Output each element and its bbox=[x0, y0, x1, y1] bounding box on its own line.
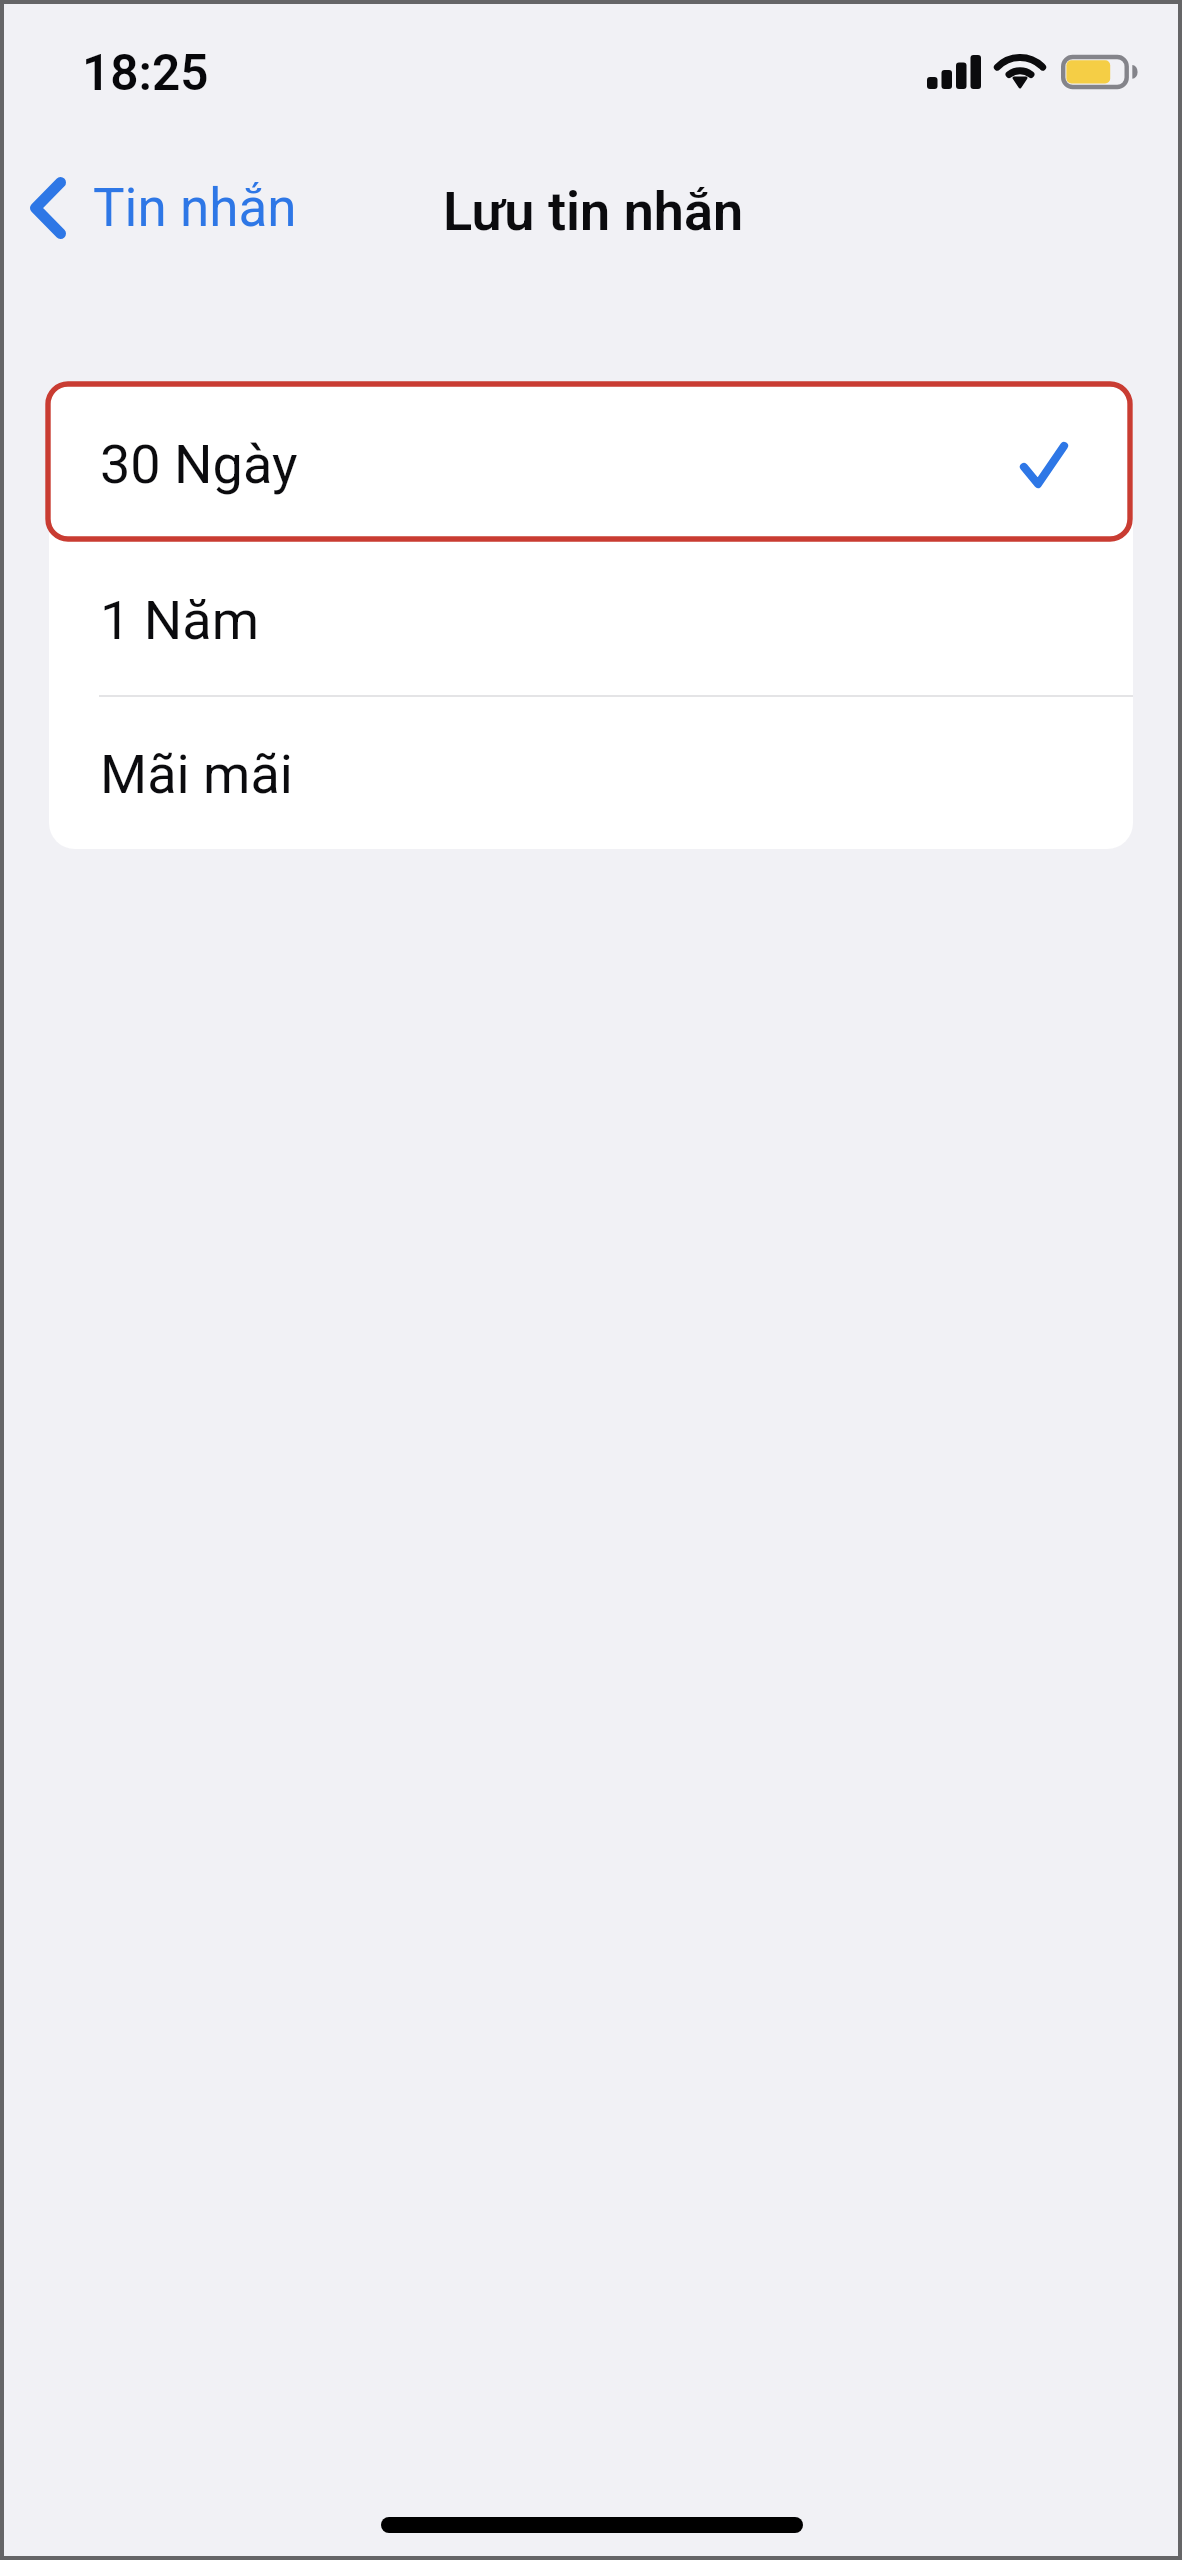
other: Selected bbox=[1020, 442, 1068, 489]
staticText: Tin nhắn bbox=[93, 177, 297, 239]
other: Cellular signal bbox=[927, 53, 983, 91]
other: Back bbox=[30, 177, 66, 239]
other: Battery bbox=[1058, 52, 1142, 94]
other: Wi-Fi bbox=[993, 50, 1047, 92]
staticText: Lưu tin nhắn bbox=[443, 180, 744, 243]
button[interactable]: 1 Năm bbox=[49, 538, 1133, 696]
button[interactable]: 30 Ngày bbox=[49, 383, 1133, 538]
button[interactable]: Mãi mãi bbox=[49, 696, 1133, 849]
staticText: 1 Năm bbox=[100, 589, 259, 652]
staticText: 30 Ngày bbox=[100, 433, 298, 496]
staticText: Mãi mãi bbox=[100, 743, 293, 806]
button[interactable]: Back bbox=[12, 153, 313, 263]
staticText: 18:25 bbox=[82, 44, 209, 102]
